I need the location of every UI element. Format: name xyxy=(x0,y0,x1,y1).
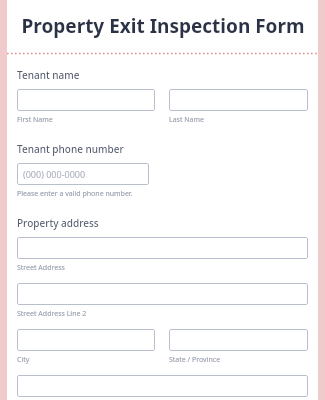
staticText: Property address xyxy=(17,216,99,230)
staticText: Please enter a valid phone number. xyxy=(17,189,133,199)
staticText: City xyxy=(17,355,30,365)
button[interactable] xyxy=(17,283,308,305)
staticText: Tenant phone number xyxy=(17,142,124,156)
staticText: Street Address xyxy=(17,263,65,273)
button[interactable] xyxy=(17,329,155,351)
button[interactable] xyxy=(17,375,308,397)
button[interactable]: (000) 000-0000 xyxy=(17,163,149,185)
staticText: Last Name xyxy=(169,115,205,125)
staticText: Tenant name xyxy=(17,68,80,82)
staticText: Street Address Line 2 xyxy=(17,309,87,319)
staticText: (000) 000-0000 xyxy=(23,168,86,180)
staticText: First Name xyxy=(17,115,53,125)
button[interactable] xyxy=(169,329,308,351)
button[interactable] xyxy=(17,89,155,111)
staticText: State / Province xyxy=(169,355,221,365)
button[interactable] xyxy=(169,89,308,111)
staticText: Property Exit Inspection Form xyxy=(21,13,305,39)
button[interactable] xyxy=(17,237,308,259)
